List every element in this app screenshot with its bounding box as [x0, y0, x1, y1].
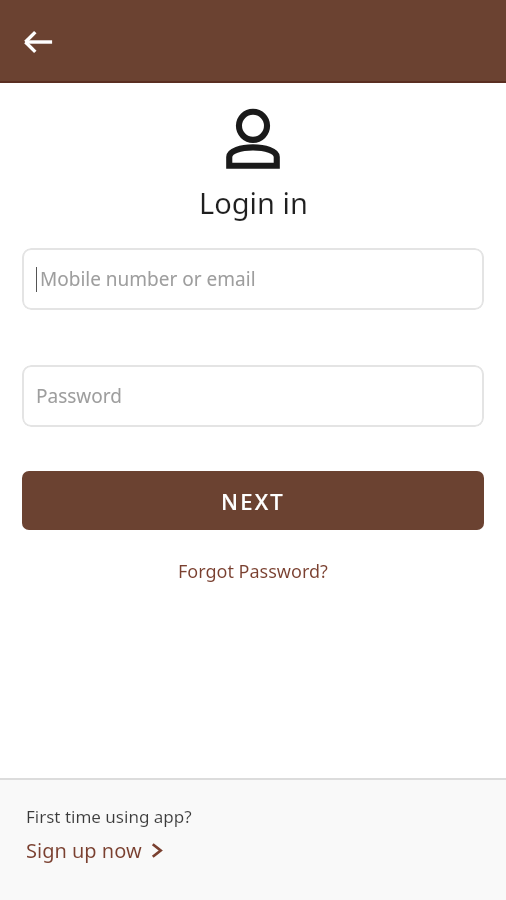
button[interactable]: Forgot Password? [170, 555, 336, 588]
staticText: Sign up now [26, 837, 142, 864]
staticText: Forgot Password? [178, 559, 328, 584]
button[interactable]: NEXT [22, 471, 484, 530]
button[interactable]: Back [14, 18, 62, 66]
button[interactable]: Password [22, 365, 484, 427]
staticText: Mobile number or email [40, 266, 256, 292]
staticText: First time using app? [26, 805, 192, 828]
staticText: Password [36, 383, 122, 409]
button[interactable]: Mobile number or email [22, 248, 484, 310]
staticText: Login in [199, 183, 308, 222]
button[interactable]: Sign up now [26, 837, 164, 864]
staticText: NEXT [221, 486, 285, 516]
